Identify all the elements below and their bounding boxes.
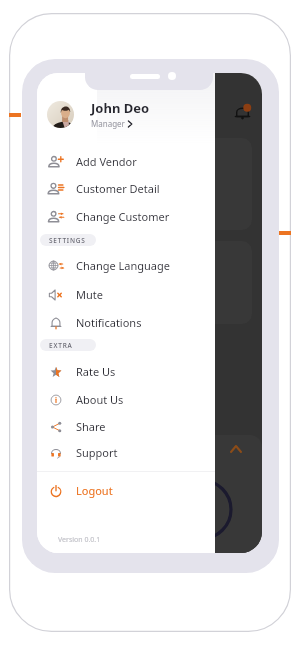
- staticText: Manager: [91, 118, 125, 129]
- button[interactable]: Notifications: [37, 309, 215, 336]
- staticText: Change Language: [76, 258, 170, 273]
- button[interactable]: Change Customer: [37, 203, 215, 230]
- button[interactable]: Add Vendor: [37, 148, 215, 175]
- staticText: SETTINGS: [49, 236, 86, 245]
- staticText: Add Vendor: [76, 154, 137, 169]
- button[interactable]: Rate Us: [37, 358, 215, 385]
- button[interactable]: Share: [37, 413, 215, 440]
- button[interactable]: Logout: [37, 477, 215, 504]
- staticText: Share: [76, 419, 106, 434]
- staticText: Notifications: [76, 315, 142, 330]
- button[interactable]: About Us: [37, 386, 215, 413]
- button[interactable]: Support: [37, 439, 215, 466]
- staticText: Customer Detail: [76, 181, 160, 196]
- staticText: Support: [76, 445, 118, 460]
- staticText: John Deo: [91, 99, 150, 117]
- staticText: EXTRA: [49, 341, 73, 350]
- staticText: Mute: [76, 287, 103, 302]
- button[interactable]: Change Language: [37, 252, 215, 279]
- staticText: Logout: [76, 483, 113, 498]
- button[interactable]: John Deo: [37, 95, 215, 133]
- staticText: Change Customer: [76, 209, 170, 224]
- button[interactable]: Mute: [37, 281, 215, 308]
- staticText: About Us: [76, 392, 124, 407]
- staticText: Rate Us: [76, 364, 116, 379]
- button[interactable]: Customer Detail: [37, 175, 215, 202]
- button[interactable]: Notifications: [234, 104, 251, 121]
- staticText: Version 0.0.1: [58, 535, 101, 545]
